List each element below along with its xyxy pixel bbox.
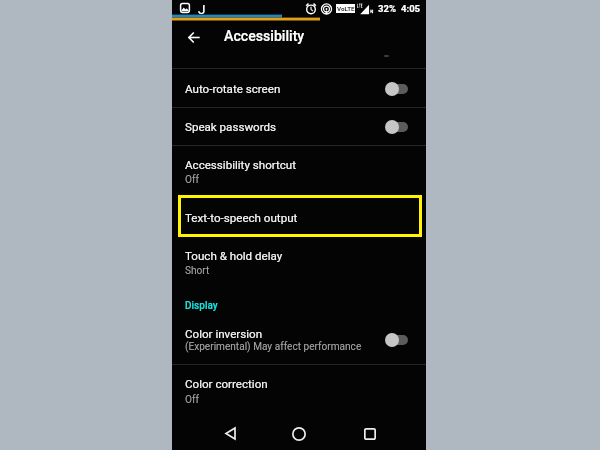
button[interactable]: Back [215, 417, 245, 450]
button[interactable]: Accessibility shortcut [172, 146, 426, 196]
staticText: (Experimental) May affect performance [185, 341, 362, 353]
staticText: Short [185, 265, 210, 277]
staticText: Text-to-speech output [185, 211, 298, 225]
staticText: Display [185, 300, 218, 312]
staticText: Accessibility shortcut [185, 158, 296, 172]
staticText: 4:05 [401, 3, 421, 14]
button[interactable]: Color inversion [172, 314, 426, 365]
staticText: Auto-rotate screen [185, 82, 281, 96]
button[interactable]: Text-to-speech output [178, 195, 422, 237]
button[interactable]: Recent apps [355, 417, 385, 450]
button[interactable]: Color correction [172, 365, 426, 413]
staticText: 32% [378, 3, 396, 14]
button[interactable]: Navigate up [179, 22, 209, 52]
button[interactable]: Home [284, 417, 314, 450]
staticText: Accessibility [224, 28, 305, 45]
staticText: Speak passwords [185, 120, 277, 134]
staticText: Color correction [185, 377, 268, 391]
staticText: J [198, 1, 206, 14]
staticText: Color inversion [185, 327, 263, 341]
staticText: Touch & hold delay [185, 249, 283, 263]
button[interactable]: Speak passwords [172, 107, 426, 146]
staticText: VoLTE [337, 5, 355, 12]
staticText: Off [185, 394, 199, 406]
button[interactable]: Auto-rotate screen [172, 69, 426, 108]
button[interactable]: Touch & hold delay [172, 236, 426, 289]
staticText: Off [185, 174, 199, 186]
